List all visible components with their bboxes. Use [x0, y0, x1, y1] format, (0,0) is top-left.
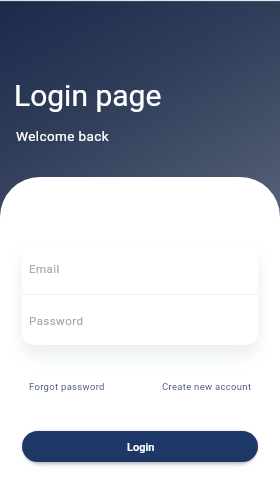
staticText: Create new account: [162, 381, 252, 392]
staticText: Forgot password: [29, 381, 105, 392]
staticText: Password: [29, 314, 84, 327]
button[interactable]: Forgot password: [29, 381, 105, 392]
staticText: Login page: [14, 78, 162, 113]
button[interactable]: Password: [22, 295, 258, 345]
staticText: Welcome back: [16, 128, 109, 144]
button[interactable]: Create new account: [162, 381, 252, 392]
staticText: Login: [127, 441, 155, 454]
button[interactable]: Email: [22, 244, 258, 294]
staticText: Email: [29, 262, 60, 275]
button[interactable]: Login: [22, 431, 258, 462]
